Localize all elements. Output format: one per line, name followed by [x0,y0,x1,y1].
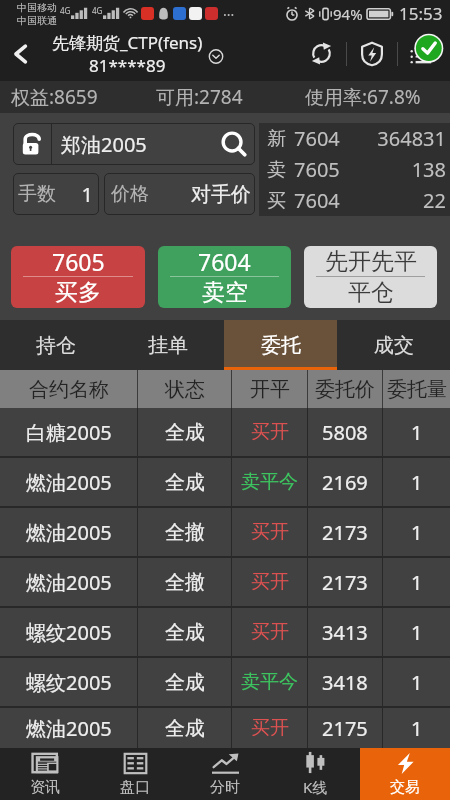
staticText: 郑油2005 [61,131,221,158]
staticText: 中国移动 [17,1,57,14]
staticText: 全成 [165,470,205,495]
staticText: 7605 [52,246,105,276]
staticText: 全撤 [165,570,205,595]
staticText: 成交 [374,333,414,358]
staticText: 7605 [294,156,340,183]
staticText: 1 [411,669,423,696]
staticText: 卖 [267,158,286,182]
button[interactable]: 燃油2005 [0,508,450,556]
button[interactable]: Refresh [296,26,346,81]
staticText: 委托量 [387,377,447,402]
staticText: 燃油2005 [26,715,112,742]
staticText: 委托价 [315,377,375,402]
staticText: 81****89 [89,54,166,77]
staticText: 开平 [250,377,290,402]
button[interactable]: 燃油2005 [0,558,450,606]
staticText: 挂单 [148,333,188,358]
button[interactable]: 交易 [360,748,450,800]
button[interactable]: Connected status [398,26,450,81]
button[interactable]: 分时 [180,748,270,800]
staticText: 可用:2784 [156,84,300,110]
staticText: 燃油2005 [26,469,112,496]
staticText: 1 [411,519,423,546]
staticText: 5808 [322,419,368,446]
staticText: ... [223,1,235,20]
staticText: 买开 [251,620,289,644]
staticText: 买开 [251,520,289,544]
staticText: 全成 [165,420,205,445]
button[interactable]: 7604 [158,246,291,308]
staticText: 权益:8659 [11,84,150,110]
button[interactable]: 手数 [13,173,99,215]
button[interactable]: 先锋期货_CTP(fens) [52,26,226,81]
button[interactable]: 白糖2005 [0,408,450,456]
staticText: 交易 [390,778,420,797]
staticText: 买开 [251,420,289,444]
staticText: 1 [411,619,423,646]
staticText: 3413 [322,619,368,646]
staticText: 螺纹2005 [26,669,112,696]
staticText: 94% [333,4,363,24]
staticText: 使用率:67.8% [305,84,450,110]
staticText: 全撤 [165,520,205,545]
staticText: 买开 [251,570,289,594]
staticText: 燃油2005 [26,519,112,546]
button[interactable]: 资讯 [0,748,90,800]
staticText: 3418 [322,669,368,696]
staticText: 白糖2005 [26,419,112,446]
button[interactable]: 盘口 [90,748,180,800]
button[interactable]: 委托 [224,320,337,370]
staticText: 资讯 [30,778,60,797]
staticText: 委托 [261,333,301,358]
staticText: 2169 [322,469,368,496]
staticText: 2175 [322,715,368,742]
button[interactable]: 7605 [11,246,145,308]
staticText: 对手价 [149,182,251,207]
staticText: 螺纹2005 [26,619,112,646]
button[interactable]: 螺纹2005 [0,658,450,706]
button[interactable]: Security [347,26,397,81]
staticText: 买 [267,189,286,213]
staticText: 22 [340,187,446,214]
button[interactable]: 燃油2005 [0,458,450,506]
staticText: 燃油2005 [26,569,112,596]
staticText: 中国联通 [17,14,57,26]
button[interactable]: 价格 [104,173,255,215]
button[interactable]: 挂单 [112,320,224,370]
staticText: 4G [60,5,71,16]
staticText: 平仓 [348,278,394,307]
staticText: 卖空 [202,278,248,307]
staticText: 手数 [18,182,56,206]
staticText: 全成 [165,670,205,695]
staticText: 先锋期货_CTP(fens) [52,31,203,54]
staticText: 138 [340,156,446,183]
button[interactable]: 成交 [337,320,450,370]
button[interactable]: 郑油2005 [13,123,255,165]
button[interactable]: 螺纹2005 [0,608,450,656]
button[interactable]: Back [0,26,42,81]
staticText: 卖平今 [241,470,298,494]
staticText: 持仓 [36,333,76,358]
staticText: 1 [411,715,423,742]
staticText: 15:53 [399,2,443,25]
staticText: 合约名称 [29,377,109,402]
staticText: 364831 [340,125,446,152]
staticText: 7604 [294,187,340,214]
staticText: 1 [411,569,423,596]
button[interactable]: 燃油2005 [0,708,450,748]
staticText: 分时 [210,778,240,797]
staticText: 盘口 [120,778,150,797]
staticText: 状态 [165,377,205,402]
staticText: K线 [303,777,328,797]
button[interactable]: 先开先平 [304,246,437,308]
staticText: 新 [267,127,286,151]
staticText: 先开先平 [325,247,417,276]
staticText: 7604 [198,246,251,276]
staticText: 买开 [251,716,289,740]
staticText: 7604 [294,125,340,152]
button[interactable]: K线 [270,748,360,800]
staticText: 卖平今 [241,670,298,694]
staticText: 1 [56,181,93,208]
staticText: 1 [411,469,423,496]
button[interactable]: 持仓 [0,320,112,370]
